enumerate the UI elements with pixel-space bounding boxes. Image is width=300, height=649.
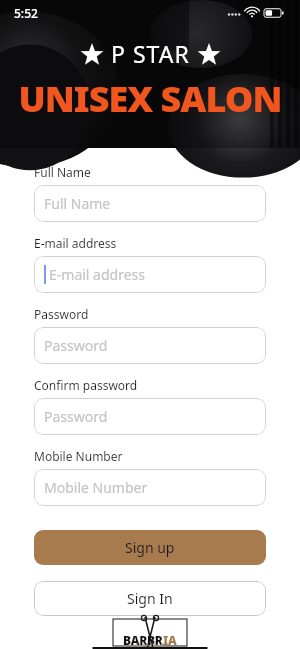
- staticText: Full Name: [34, 164, 91, 180]
- button[interactable]: Sign up: [34, 530, 266, 565]
- staticText: Mobile Number: [44, 478, 148, 497]
- staticText: P STAR: [111, 38, 190, 69]
- other: Barbria Elegance logo: [0, 616, 300, 649]
- staticText: Sign up: [125, 538, 175, 557]
- staticText: Password: [44, 407, 108, 426]
- button[interactable]: Sign In: [34, 581, 266, 616]
- staticText: Full Name: [44, 194, 111, 213]
- button[interactable]: Password: [34, 327, 266, 364]
- staticText: Password: [44, 336, 108, 355]
- button[interactable]: E-mail address: [34, 256, 266, 293]
- staticText: IA: [163, 632, 177, 648]
- staticText: Mobile Number: [34, 448, 123, 464]
- staticText: BARBR: [123, 632, 163, 648]
- button[interactable]: Full Name: [34, 185, 266, 222]
- staticText: E-mail address: [34, 235, 117, 251]
- staticText: 5:52: [14, 5, 38, 21]
- staticText: E-mail address: [49, 265, 145, 284]
- staticText: Password: [34, 306, 89, 322]
- staticText: UNISEX SALON: [0, 74, 300, 123]
- staticText: ELEGANCE: [136, 642, 164, 647]
- staticText: Confirm password: [34, 377, 138, 393]
- button[interactable]: Mobile Number: [34, 469, 266, 506]
- staticText: Sign In: [127, 589, 173, 608]
- button[interactable]: Password: [34, 398, 266, 435]
